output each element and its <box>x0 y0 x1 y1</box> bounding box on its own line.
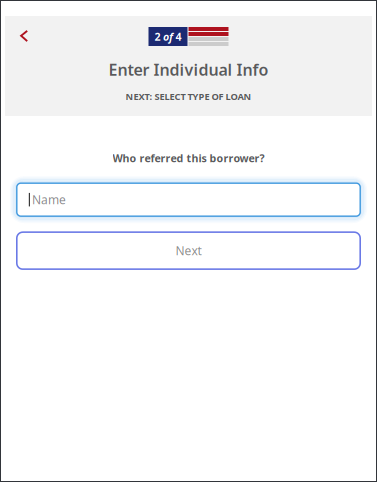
staticText: Next <box>175 243 201 259</box>
staticText: of <box>163 29 173 44</box>
staticText: Who referred this borrower? <box>112 151 264 165</box>
button[interactable]: Back <box>11 23 37 49</box>
button[interactable]: Next <box>0 232 377 269</box>
staticText: NEXT: SELECT TYPE OF LOAN <box>125 90 251 103</box>
staticText: Name <box>32 192 66 208</box>
staticText: Enter Individual Info <box>108 59 268 80</box>
staticText: 2 <box>154 29 160 44</box>
staticText: 4 <box>175 29 181 44</box>
